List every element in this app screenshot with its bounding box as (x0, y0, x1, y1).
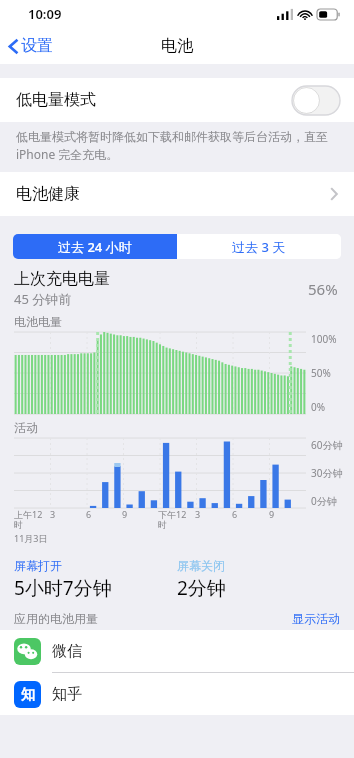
staticText: 45 分钟前 (14, 290, 72, 308)
staticText: 50% (311, 366, 331, 380)
staticText: 屏幕关闭 (177, 558, 225, 573)
button[interactable]: 显示活动 (292, 611, 340, 626)
staticText: 电池 (161, 36, 193, 56)
staticText: 3 (195, 508, 201, 520)
button[interactable]: 电池健康 (0, 172, 354, 216)
staticText: 10:09 (28, 5, 62, 23)
button[interactable]: 低电量模式开关 (292, 86, 340, 115)
button[interactable]: 知 (0, 673, 354, 715)
staticText: 应用的电池用量 (14, 611, 292, 626)
staticText: 上次充电电量 (14, 269, 110, 289)
staticText: 6 (232, 508, 238, 520)
staticText: 微信 (52, 642, 82, 661)
button[interactable]: 微信 (0, 630, 354, 672)
button[interactable]: 设置 (0, 32, 63, 60)
staticText: 3 (50, 508, 56, 520)
staticText: 0分钟 (311, 494, 337, 508)
staticText: 9 (122, 508, 128, 520)
button[interactable]: 低电量模式 (0, 78, 354, 122)
button[interactable]: 过去 3 天 (177, 234, 341, 259)
staticText: iPhone 完全充电。 (16, 146, 119, 162)
staticText: 5小时7分钟 (14, 575, 112, 601)
staticText: 下午12 时 (158, 508, 187, 531)
staticText: 低电量模式 (16, 90, 96, 110)
staticText: 过去 3 天 (232, 238, 286, 256)
staticText: 11月3日 (14, 532, 48, 544)
staticText: 9 (269, 508, 275, 520)
staticText: 过去 24 小时 (58, 238, 132, 256)
staticText: 0% (311, 400, 326, 414)
staticText: 活动 (14, 420, 38, 435)
staticText: 显示活动 (292, 611, 340, 626)
staticText: 2分钟 (177, 575, 226, 601)
staticText: 100% (311, 332, 337, 346)
staticText: 6 (86, 508, 92, 520)
button[interactable]: 过去 24 小时 (13, 234, 177, 259)
staticText: 屏幕打开 (14, 558, 62, 573)
staticText: 60分钟 (311, 438, 343, 452)
staticText: 30分钟 (311, 466, 343, 480)
staticText: 上午12 时 (14, 508, 43, 531)
staticText: 56% (308, 279, 338, 299)
staticText: 知乎 (52, 685, 82, 704)
staticText: 设置 (21, 36, 53, 56)
staticText: 低电量模式将暂时降低如下载和邮件获取等后台活动，直至 (16, 129, 328, 144)
staticText: 电池健康 (16, 184, 80, 204)
staticText: 知 (21, 686, 35, 704)
staticText: 电池电量 (14, 314, 62, 329)
